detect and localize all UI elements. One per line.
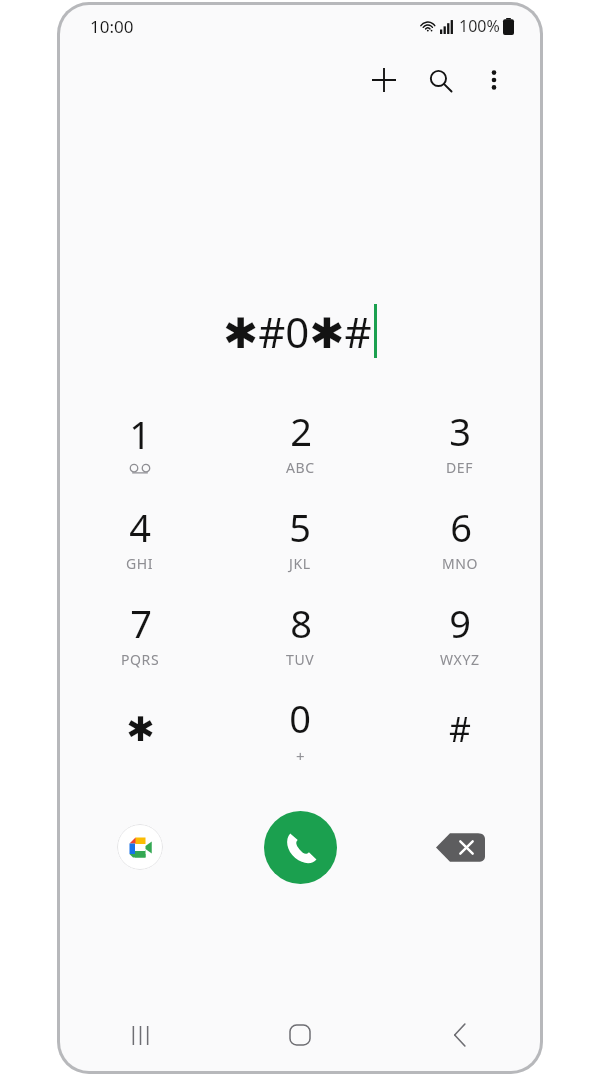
staticText: 0	[289, 692, 311, 744]
staticText: TUV	[286, 650, 315, 669]
staticText: PQRS	[121, 650, 160, 669]
staticText: 3	[449, 405, 471, 457]
staticText: ✱#0✱#	[223, 303, 372, 360]
button[interactable]: Backspace	[434, 831, 486, 864]
staticText: ABC	[286, 458, 315, 477]
staticText: #	[449, 706, 471, 752]
button[interactable]: 7	[60, 585, 220, 681]
staticText: MNO	[442, 554, 479, 573]
staticText: 2	[290, 405, 312, 457]
button[interactable]: ✱	[60, 681, 220, 777]
button[interactable]: Home	[220, 1009, 380, 1061]
staticText: ✱	[126, 709, 155, 749]
button[interactable]: Back	[380, 1009, 540, 1061]
button[interactable]: 6	[380, 489, 540, 585]
button[interactable]: 1	[60, 393, 220, 489]
button[interactable]: More options	[470, 56, 518, 104]
button[interactable]: Add contact	[360, 56, 408, 104]
staticText: DEF	[446, 458, 474, 477]
button[interactable]: 8	[220, 585, 380, 681]
staticText: 7	[130, 597, 152, 649]
staticText: 10:00	[90, 15, 134, 38]
staticText: 8	[290, 597, 312, 649]
staticText: JKL	[289, 554, 311, 573]
staticText: 4	[129, 501, 151, 553]
button[interactable]: 3	[380, 393, 540, 489]
staticText: GHI	[126, 554, 154, 573]
button[interactable]: Search	[416, 56, 464, 104]
button[interactable]: 5	[220, 489, 380, 585]
button[interactable]: 9	[380, 585, 540, 681]
staticText: 6	[450, 501, 472, 553]
button[interactable]: 0	[220, 681, 380, 777]
button[interactable]: Video call	[117, 824, 163, 870]
button[interactable]: Call	[264, 811, 337, 884]
button[interactable]: 4	[60, 489, 220, 585]
staticText: 9	[449, 597, 471, 649]
staticText: 100%	[459, 15, 500, 37]
staticText: 1	[129, 408, 151, 460]
staticText: WXYZ	[440, 650, 480, 669]
staticText: 5	[289, 501, 311, 553]
button[interactable]: 2	[220, 393, 380, 489]
staticText: +	[296, 746, 305, 766]
button[interactable]: Recents	[60, 1009, 220, 1061]
button[interactable]: #	[380, 681, 540, 777]
